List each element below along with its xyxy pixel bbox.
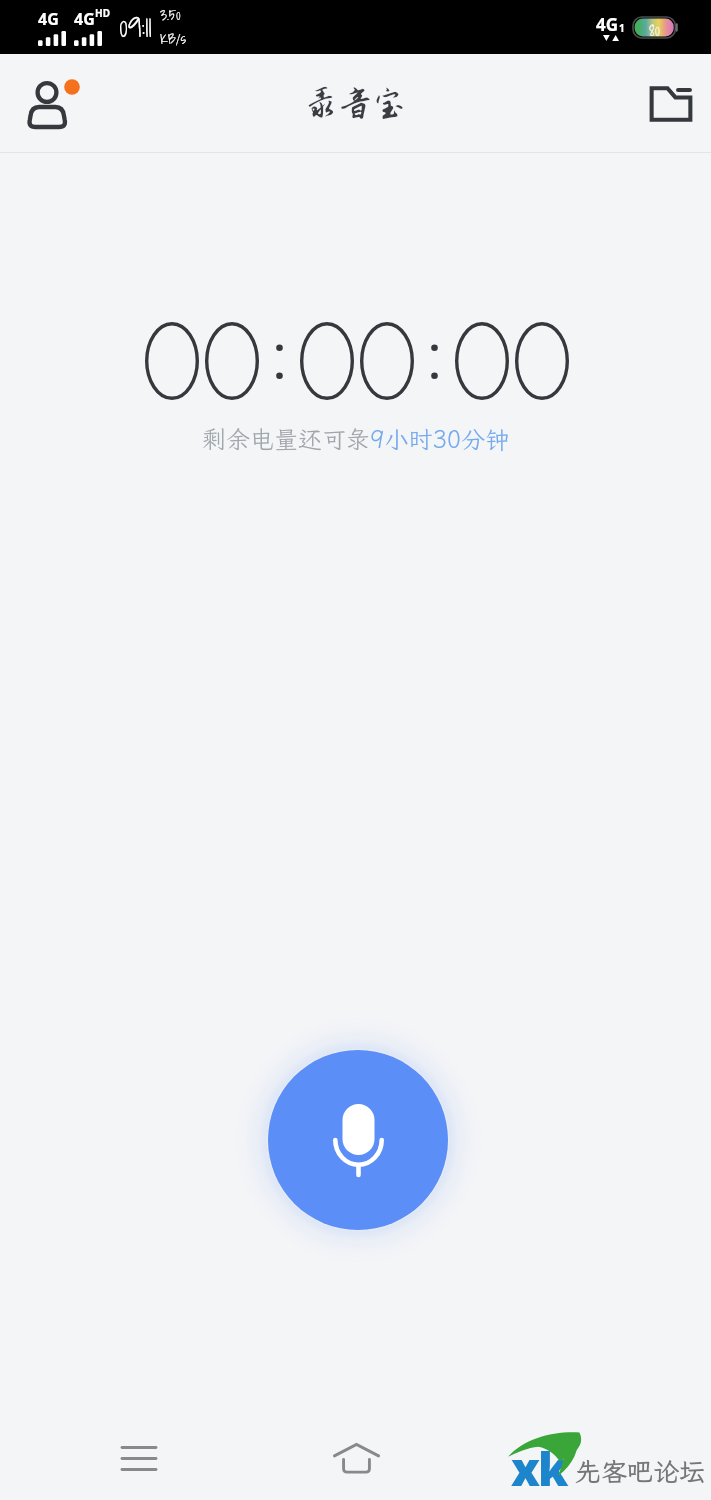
staticText: 4G: [596, 13, 619, 36]
button[interactable]: Record: [268, 1050, 448, 1230]
staticText: HD: [95, 6, 110, 20]
staticText: 先客吧论坛: [575, 1454, 706, 1488]
staticText: 1: [619, 21, 625, 35]
button[interactable]: Home: [321, 1423, 391, 1493]
button[interactable]: Menu: [104, 1423, 174, 1493]
staticText: 4G: [74, 8, 95, 30]
button[interactable]: Files: [635, 68, 707, 140]
staticText: 80: [649, 16, 660, 37]
staticText: 3.50: [160, 2, 181, 26]
staticText: xk: [511, 1437, 567, 1500]
staticText: 09:11: [119, 3, 152, 50]
staticText: 剩余电量还可录9小时30分钟: [202, 423, 510, 455]
staticText: 录音宝: [304, 85, 407, 123]
staticText: KB/s: [160, 26, 187, 50]
button[interactable]: Account: [10, 68, 82, 140]
staticText: 4G: [38, 8, 59, 30]
